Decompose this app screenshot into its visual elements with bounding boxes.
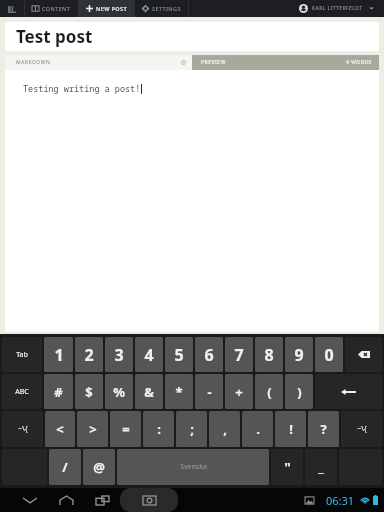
button[interactable]: $ [75,374,103,409]
button[interactable]: ! [275,411,306,447]
button[interactable]: ) [285,374,313,409]
staticText: SETTINGS [152,5,181,12]
staticText: . [256,420,260,438]
button[interactable]: 5 [165,337,193,372]
button[interactable]: KARL LITTERFELDT [293,0,384,17]
staticText: 0 [324,344,334,366]
staticText: / [62,458,68,476]
staticText: " [284,458,291,476]
button[interactable]: 3 [105,337,133,372]
button[interactable]: ABC [2,374,42,409]
button[interactable]: Recents [84,488,120,512]
button[interactable]: ; [176,411,207,447]
button[interactable]: Svenska [117,449,269,485]
staticText: 4 WORDS [346,59,372,66]
button[interactable]: CONTENT [25,0,78,17]
button[interactable]: < [45,411,75,447]
staticText: 7 [234,344,244,366]
staticText: 5 [174,344,184,366]
button[interactable]: # [44,374,73,409]
staticText: 3 [114,344,124,366]
button[interactable]: - [195,374,223,409]
button[interactable]: Back [12,488,48,512]
staticText: PREVIEW [201,59,226,66]
staticText: < [56,420,64,438]
staticText: @ [93,458,105,476]
button[interactable]: 0 [315,337,343,372]
button[interactable]: 6 [195,337,223,372]
button[interactable]: / [49,449,81,485]
button[interactable]: Testing writing a post! [5,70,379,332]
button[interactable]: SETTINGS [135,0,188,17]
button[interactable]: = [110,411,141,447]
button[interactable]: NEW POST [79,0,134,17]
button[interactable]: Backspace [345,337,382,372]
staticText: ? [320,420,327,438]
staticText: Test post [16,25,93,48]
staticText: , [223,420,227,438]
button[interactable]: 9 [285,337,313,372]
button[interactable]: * [165,374,193,409]
staticText: 6 [204,344,214,366]
button[interactable]: 2 [75,337,103,372]
staticText: CONTENT [42,5,71,12]
button[interactable]: 7 [225,337,253,372]
staticText: > [89,420,97,438]
staticText: : [157,420,161,438]
button[interactable]: + [225,374,253,409]
button[interactable]: Screenshot [120,488,178,512]
button[interactable]: Menu [0,0,24,17]
staticText: * [175,383,183,401]
button[interactable]: , [209,411,240,447]
button[interactable]: > [77,411,108,447]
staticText: ABC [15,387,29,397]
button[interactable]: @ [83,449,115,485]
staticText: 06:31 [326,493,355,508]
staticText: NEW POST [96,5,127,12]
button[interactable]: % [105,374,133,409]
staticText: ! [289,420,293,438]
staticText: ; [190,420,194,438]
button[interactable]: " [271,449,303,485]
staticText: - [207,383,212,401]
staticText: + [235,383,243,401]
staticText: 2 [84,344,94,366]
staticText: 8 [264,344,274,366]
staticText: % [113,383,125,401]
staticText: & [144,383,154,401]
staticText: $ [85,383,93,401]
staticText: 1 [54,344,64,366]
staticText: ~\{ [18,424,28,434]
button[interactable]: & [135,374,163,409]
button[interactable]: Test post [5,22,379,51]
button[interactable]: PREVIEW [192,55,379,70]
button[interactable]: ~\{ [341,411,382,447]
staticText: ) [297,383,302,401]
staticText: ( [267,383,272,401]
button[interactable]: 8 [255,337,283,372]
staticText: 4 [144,344,154,366]
button[interactable]: _ [305,449,337,485]
staticText: Tab [16,350,28,360]
button[interactable]: : [143,411,174,447]
staticText: # [54,383,63,401]
staticText: 9 [294,344,304,366]
button[interactable]: ( [255,374,283,409]
button[interactable]: 1 [44,337,73,372]
button[interactable]: ~\{ [2,411,43,447]
staticText: ~\{ [357,424,367,434]
button[interactable]: . [242,411,273,447]
staticText: Testing writing a post! [23,83,141,95]
staticText: _ [318,458,324,476]
button[interactable]: Enter [315,374,382,409]
button[interactable]: Home [48,488,84,512]
button[interactable]: ? [308,411,339,447]
staticText: = [122,420,130,438]
staticText: KARL LITTERFELDT [312,5,363,12]
staticText: MARKDOWN [16,59,51,66]
button[interactable]: Tab [2,337,42,372]
button[interactable]: 4 [135,337,163,372]
button[interactable]: MARKDOWN [5,55,192,70]
